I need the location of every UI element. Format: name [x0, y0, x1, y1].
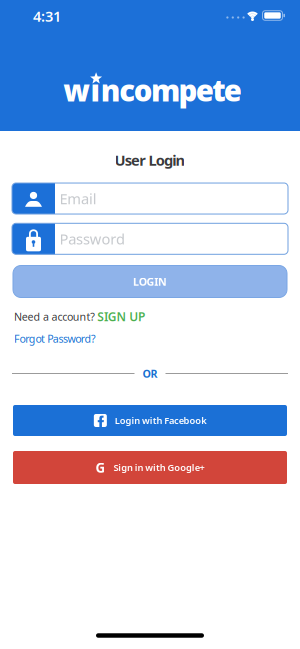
- button[interactable]: Login with Facebook: [13, 405, 287, 436]
- button[interactable]: Email: [12, 183, 288, 214]
- staticText: G: [95, 459, 105, 476]
- staticText: SIGN UP: [97, 308, 145, 324]
- staticText: Need a account?: [14, 309, 95, 324]
- staticText: 4:31: [33, 6, 61, 26]
- staticText: Sign in with Google+: [113, 461, 204, 474]
- staticText: LOGIN: [133, 274, 167, 289]
- button[interactable]: SIGN UP: [97, 308, 145, 324]
- staticText: Forgot Password?: [14, 331, 96, 346]
- button[interactable]: Password: [12, 223, 288, 254]
- staticText: Email: [59, 189, 97, 208]
- button[interactable]: G: [13, 451, 287, 484]
- button[interactable]: Forgot Password?: [14, 331, 96, 346]
- staticText: w: [63, 70, 90, 109]
- staticText: Password: [59, 229, 125, 249]
- staticText: ncompete: [101, 70, 242, 109]
- button[interactable]: LOGIN: [13, 265, 287, 297]
- staticText: ı: [91, 70, 101, 109]
- staticText: Login with Facebook: [115, 414, 206, 427]
- staticText: User Login: [115, 150, 185, 170]
- staticText: OR: [142, 366, 157, 381]
